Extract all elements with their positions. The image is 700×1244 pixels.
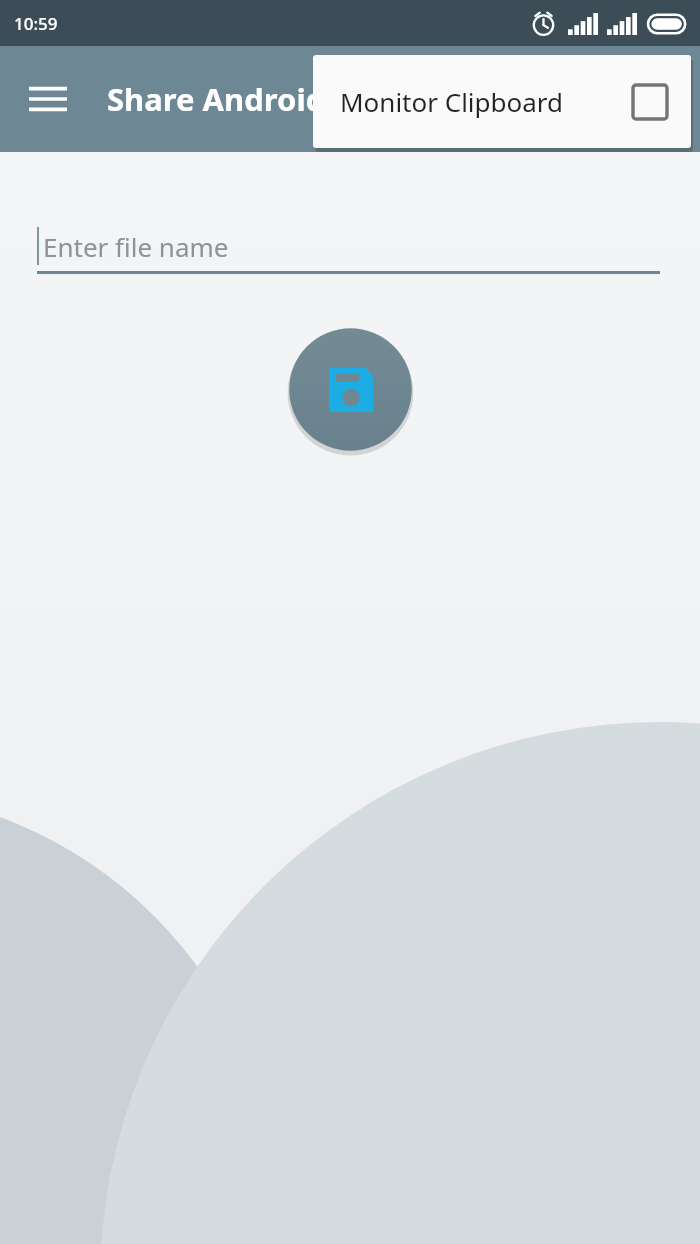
staticText: Share Android [107,78,326,120]
button[interactable]: Monitor Clipboard [313,55,691,148]
staticText: 10:59 [14,12,58,35]
staticText: Monitor Clipboard [340,84,564,119]
button[interactable]: Enter file name [37,218,660,274]
button[interactable]: Save file [287,326,414,453]
button[interactable]: Open navigation menu [22,73,74,125]
staticText: Enter file name [43,229,229,264]
